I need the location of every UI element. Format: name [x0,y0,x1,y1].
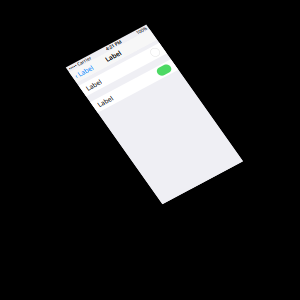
staticText: Label [131,27,189,57]
